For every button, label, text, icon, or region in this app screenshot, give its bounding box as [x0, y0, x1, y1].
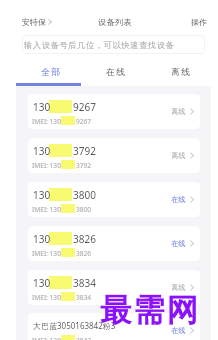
staticText: 在线 [171, 195, 186, 204]
staticText: 操作 [191, 17, 207, 27]
staticText: 大巴蓝3050163842粉3 [33, 320, 116, 331]
staticText: IMEI: 130 [32, 336, 61, 340]
staticText: 全部 [41, 67, 62, 78]
button[interactable]: 130 [28, 138, 200, 173]
staticText: IMEI: 130 [32, 249, 61, 258]
button[interactable]: 在线 [81, 60, 146, 86]
button[interactable]: 离线 [146, 60, 211, 86]
staticText: 在线 [106, 67, 127, 78]
staticText: 离线 [171, 283, 186, 292]
button[interactable]: 安特保 [22, 17, 52, 27]
staticText: 3834 [73, 276, 96, 290]
staticText: 130 [33, 100, 51, 114]
button[interactable]: 大巴蓝3050163842粉3 [28, 313, 200, 340]
staticText: 在线 [171, 239, 186, 248]
staticText: IMEI: 130 [32, 117, 61, 126]
staticText: 3800 [73, 188, 96, 202]
staticText: 输入设备号后几位，可以快速查找设备 [24, 40, 175, 50]
button[interactable]: 130 [28, 270, 200, 305]
staticText: 9267 [73, 100, 96, 114]
staticText: 3800 [76, 205, 92, 214]
staticText: 130 [33, 276, 51, 290]
staticText: 3842 [76, 336, 92, 340]
staticText: 9267 [76, 117, 92, 126]
staticText: 设备列表 [98, 17, 132, 27]
staticText: 安特保 [22, 17, 46, 27]
staticText: 离线 [171, 107, 186, 116]
staticText: 130 [33, 232, 51, 246]
staticText: IMEI: 130 [32, 293, 61, 302]
staticText: IMEI: 130 [32, 161, 61, 170]
staticText: 3834 [76, 293, 92, 302]
button[interactable]: 设备列表 [98, 17, 132, 27]
button[interactable]: 全部 [16, 60, 81, 86]
staticText: 离线 [171, 151, 186, 160]
staticText: 3792 [76, 161, 92, 170]
staticText: 在线 [171, 326, 186, 335]
staticText: 3792 [73, 144, 96, 158]
staticText: 130 [33, 188, 51, 202]
staticText: 最需网 [100, 291, 200, 331]
button[interactable]: 130 [28, 94, 200, 129]
button[interactable]: 输入设备号后几位，可以快速查找设备 [22, 35, 205, 54]
staticText: 3826 [73, 232, 96, 246]
button[interactable]: 130 [28, 182, 200, 217]
staticText: 130 [33, 144, 51, 158]
staticText: 3826 [76, 249, 92, 258]
staticText: 离线 [171, 67, 192, 78]
staticText: IMEI: 130 [32, 205, 61, 214]
button[interactable]: 130 [28, 226, 200, 261]
button[interactable]: 操作 [191, 17, 207, 27]
